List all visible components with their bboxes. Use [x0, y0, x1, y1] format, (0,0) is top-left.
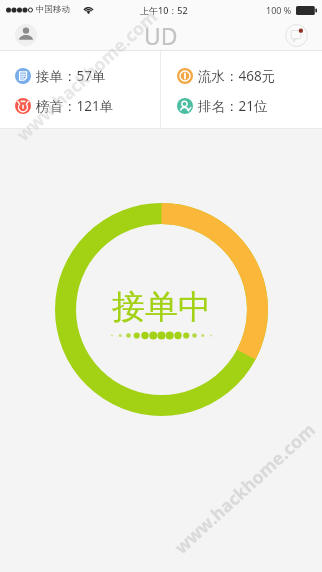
staticText: 上午10：52	[140, 4, 188, 16]
staticText: www.hackhome.com	[11, 4, 162, 146]
staticText: 100 %	[266, 4, 292, 16]
staticText: 接单中	[112, 286, 211, 328]
staticText: 榜首：121单	[36, 97, 114, 114]
staticText: UD	[144, 20, 178, 51]
button[interactable]: 流水：468元	[177, 67, 322, 84]
button[interactable]: 榜首：121单	[15, 97, 160, 114]
button[interactable]: 排名：21位	[177, 97, 322, 114]
button[interactable]: Profile	[15, 24, 37, 46]
button[interactable]: 接单：57单	[15, 67, 160, 84]
staticText: 排名：21位	[198, 97, 268, 114]
button[interactable]: Messages	[285, 24, 308, 47]
staticText: 中国移动	[36, 4, 70, 15]
staticText: 接单：57单	[36, 67, 106, 84]
staticText: www.hackhome.com	[169, 417, 320, 559]
staticText: 流水：468元	[198, 67, 276, 84]
